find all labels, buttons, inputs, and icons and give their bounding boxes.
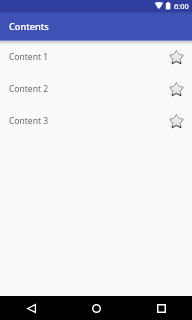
- button[interactable]: Content 2: [0, 73, 192, 105]
- button[interactable]: Home: [85, 297, 107, 319]
- staticText: Contents: [9, 20, 49, 33]
- staticText: Content 1: [9, 51, 164, 63]
- button[interactable]: Favourite: [164, 77, 188, 101]
- button[interactable]: Recent apps: [150, 297, 172, 319]
- staticText: Content 2: [9, 83, 164, 95]
- staticText: 6:00: [174, 1, 189, 11]
- button[interactable]: Content 3: [0, 105, 192, 137]
- staticText: Content 3: [9, 115, 164, 127]
- button[interactable]: Favourite: [164, 45, 188, 69]
- button[interactable]: Content 1: [0, 41, 192, 73]
- button[interactable]: Favourite: [164, 109, 188, 133]
- button[interactable]: Back: [20, 297, 42, 319]
